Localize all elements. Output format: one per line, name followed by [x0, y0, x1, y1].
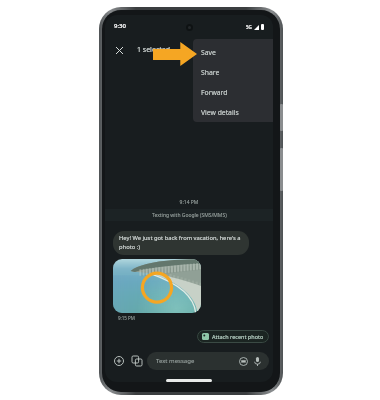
staticText: Share: [201, 68, 220, 77]
staticText: Hey! We just got back from vacation, her…: [119, 234, 243, 250]
button[interactable]: Text message: [147, 352, 269, 370]
staticText: Attach recent photo: [212, 333, 264, 340]
staticText: Texting with Google (SMS/MMS): [152, 212, 227, 219]
staticText: 9:14 PM: [105, 199, 273, 206]
button[interactable]: Gallery: [130, 354, 144, 368]
button[interactable]: Forward: [193, 82, 273, 102]
button[interactable]: Save: [193, 42, 273, 62]
staticText: 9:30: [114, 22, 126, 30]
other: Voice message: [253, 357, 262, 366]
staticText: 5G: [246, 24, 252, 30]
staticText: Text message: [156, 357, 195, 365]
button[interactable]: Photo from vacation: [113, 259, 201, 313]
button[interactable]: Attach recent photo: [197, 330, 269, 343]
staticText: Forward: [201, 88, 228, 97]
button[interactable]: Share: [193, 62, 273, 82]
button[interactable]: View details: [193, 102, 273, 122]
button[interactable]: Hey! We just got back from vacation, her…: [113, 231, 249, 255]
button[interactable]: Add attachment: [112, 354, 126, 368]
staticText: View details: [201, 108, 239, 117]
staticText: 9:15 PM: [118, 315, 135, 321]
button[interactable]: Close: [111, 42, 127, 58]
other: Stickers: [239, 357, 248, 366]
staticText: 1 selected: [137, 45, 171, 55]
staticText: Save: [201, 48, 216, 57]
